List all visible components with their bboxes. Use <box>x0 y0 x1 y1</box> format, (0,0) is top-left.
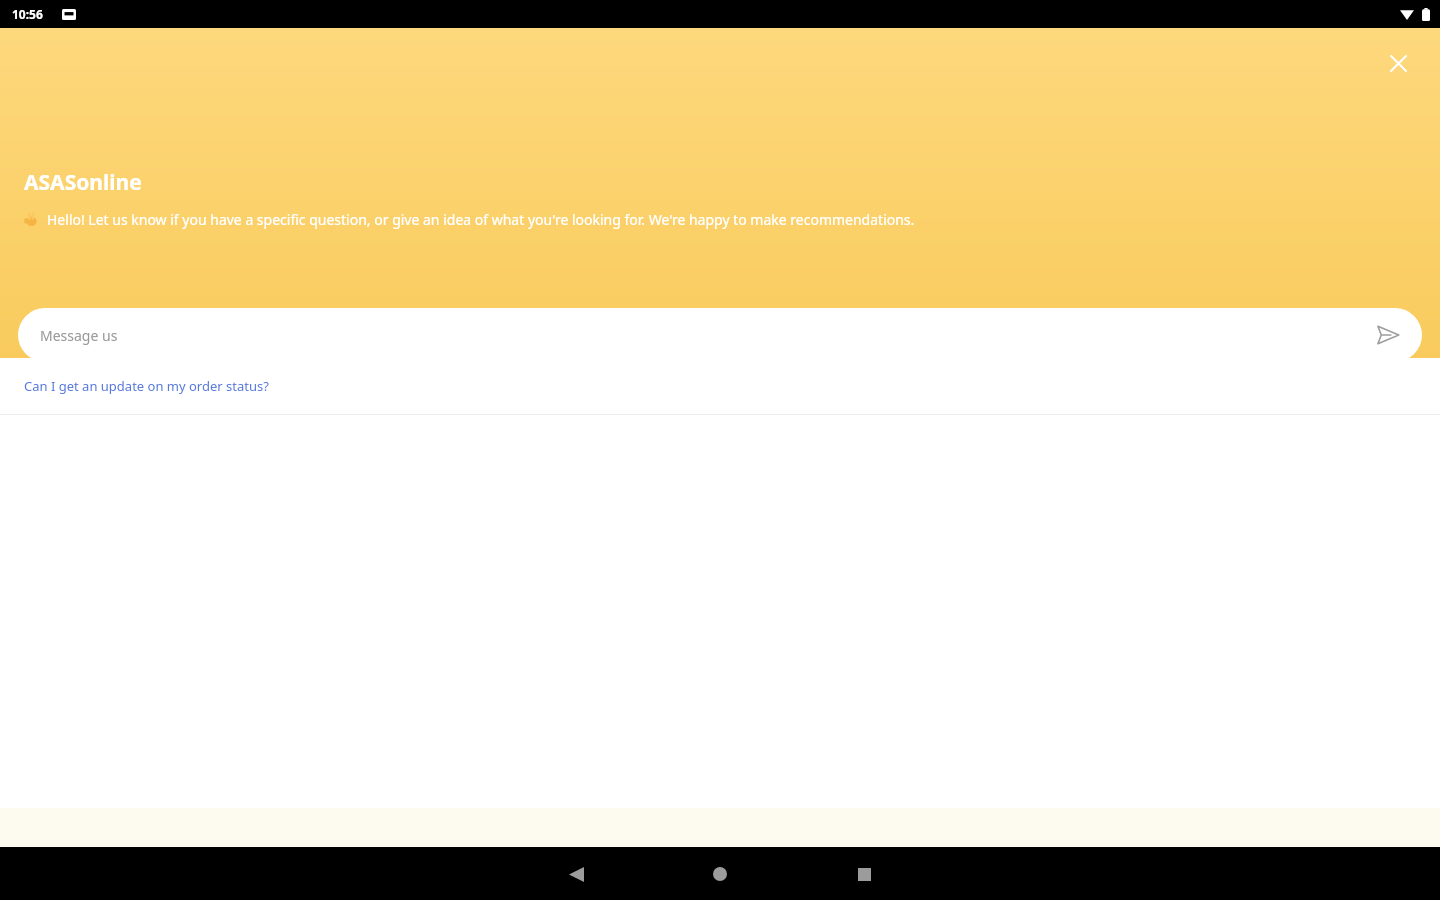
staticText: 10:56 <box>12 6 43 22</box>
staticText: ASASonline <box>24 168 142 197</box>
staticText: Hello! Let us know if you have a specifi… <box>47 210 915 229</box>
button[interactable]: Home <box>700 854 740 894</box>
button[interactable]: Can I get an update on my order status? <box>0 358 1440 414</box>
staticText: Can I get an update on my order status? <box>24 377 269 395</box>
button[interactable]: Close <box>1378 43 1418 83</box>
staticText: Message us <box>40 326 118 345</box>
button[interactable]: Send <box>1370 317 1406 353</box>
button[interactable]: Back <box>556 854 596 894</box>
button[interactable]: Message us <box>18 308 1422 362</box>
button[interactable]: Recent apps <box>844 854 884 894</box>
